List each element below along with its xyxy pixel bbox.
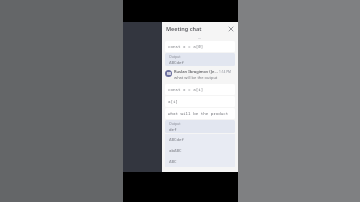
- button[interactable]: Close chat: [227, 25, 235, 33]
- staticText: def: [169, 127, 177, 133]
- staticText: ···: [198, 36, 202, 41]
- staticText: Ruslan Ibragimov (Je...: [174, 69, 218, 74]
- staticText: Output: [169, 54, 181, 59]
- staticText: a[i]: [168, 99, 179, 105]
- button[interactable]: const x = a[0]: [165, 41, 235, 52]
- staticText: abABC: [169, 148, 182, 154]
- staticText: ABCdef: [169, 137, 185, 143]
- staticText: ABCdef: [169, 60, 185, 66]
- staticText: what will be the product: [168, 111, 229, 117]
- staticText: 1:14 PM: [219, 70, 231, 74]
- staticText: what will be the output: [174, 75, 218, 80]
- staticText: ABC: [169, 159, 177, 165]
- staticText: const x = a[0]: [168, 44, 204, 50]
- button[interactable]: abABC: [165, 145, 235, 156]
- staticText: RB: [167, 72, 171, 76]
- button[interactable]: a[i]: [165, 96, 235, 107]
- button[interactable]: ABCdef: [165, 134, 235, 145]
- button[interactable]: Output: [165, 120, 235, 133]
- staticText: const x = a[i]: [168, 87, 204, 93]
- button[interactable]: ABC: [165, 156, 235, 167]
- button[interactable]: RB: [165, 69, 235, 83]
- staticText: Meeting chat: [166, 25, 202, 32]
- button[interactable]: Output: [165, 53, 235, 66]
- button[interactable]: what will be the product: [165, 108, 235, 119]
- button[interactable]: const x = a[i]: [165, 84, 235, 95]
- staticText: Output: [169, 121, 181, 126]
